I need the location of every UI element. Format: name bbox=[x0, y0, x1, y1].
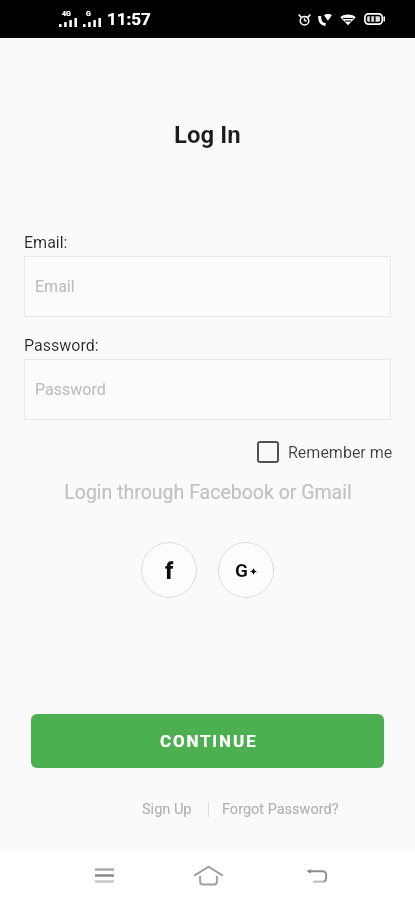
button[interactable]: Home bbox=[176, 850, 240, 900]
button[interactable]: Remember me bbox=[257, 441, 393, 463]
button[interactable]: Sign in with Facebook bbox=[141, 542, 197, 598]
button[interactable]: Sign in with Google Plus bbox=[218, 542, 274, 598]
staticText: CONTINUE bbox=[160, 731, 258, 751]
staticText: Remember me bbox=[288, 443, 393, 462]
staticText: G bbox=[86, 10, 91, 18]
button[interactable]: Back bbox=[284, 850, 348, 900]
staticText: Password bbox=[35, 380, 106, 399]
button[interactable]: Sign Up bbox=[142, 801, 192, 818]
staticText: Log In bbox=[174, 121, 241, 149]
button[interactable]: Email bbox=[24, 256, 391, 317]
staticText: Email: bbox=[24, 233, 68, 252]
button[interactable]: CONTINUE bbox=[31, 714, 384, 768]
button[interactable]: Recent apps bbox=[73, 850, 136, 900]
staticText: Login through Facebook or Gmail bbox=[64, 481, 352, 504]
button[interactable]: Password bbox=[24, 359, 391, 420]
staticText: Password: bbox=[24, 336, 99, 355]
button[interactable]: Forgot Password? bbox=[222, 801, 339, 818]
staticText: Email bbox=[35, 277, 75, 296]
staticText: f bbox=[165, 558, 174, 585]
staticText: G bbox=[235, 559, 248, 581]
staticText: 11:57 bbox=[107, 9, 151, 29]
staticText: 4G bbox=[62, 10, 71, 18]
